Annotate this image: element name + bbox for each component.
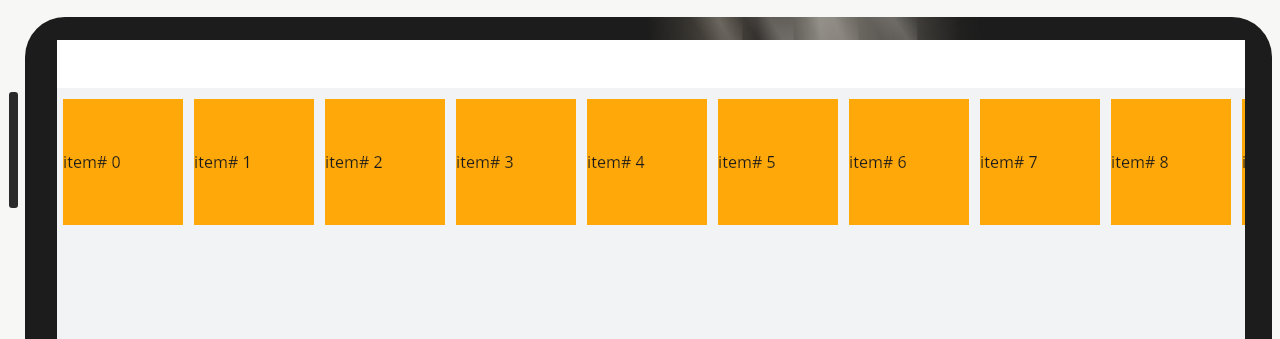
button[interactable]: item# 0 (63, 99, 183, 225)
button[interactable]: item# 2 (325, 99, 445, 225)
staticText: item# 7 (980, 151, 1038, 173)
staticText: item# 4 (587, 151, 645, 173)
staticText: item# 9 (1242, 151, 1245, 173)
button[interactable]: item# 3 (456, 99, 576, 225)
button[interactable]: item# 1 (194, 99, 314, 225)
button[interactable]: item# 8 (1111, 99, 1231, 225)
button[interactable]: item# 7 (980, 99, 1100, 225)
staticText: item# 1 (194, 151, 252, 173)
staticText: item# 2 (325, 151, 383, 173)
button[interactable]: item# 9 (1242, 99, 1245, 225)
button[interactable]: item# 4 (587, 99, 707, 225)
staticText: item# 5 (718, 151, 776, 173)
button[interactable]: item# 6 (849, 99, 969, 225)
staticText: item# 6 (849, 151, 907, 173)
staticText: item# 3 (456, 151, 514, 173)
staticText: item# 8 (1111, 151, 1169, 173)
button[interactable]: item# 5 (718, 99, 838, 225)
other: Volume button (9, 92, 18, 208)
staticText: item# 0 (63, 151, 121, 173)
